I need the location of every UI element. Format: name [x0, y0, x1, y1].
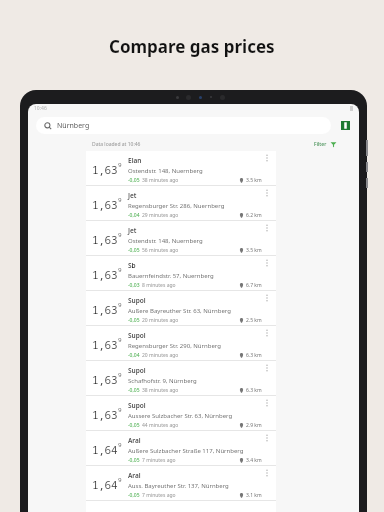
- button[interactable]: 1,63: [86, 396, 276, 431]
- staticText: 3.1 km: [246, 492, 262, 499]
- staticText: 1,63: [92, 197, 118, 212]
- button[interactable]: More options: [262, 294, 272, 325]
- staticText: 20 minutes ago: [142, 317, 179, 324]
- staticText: Compare gas prices: [109, 35, 275, 58]
- staticText: 3.5 km: [246, 247, 262, 254]
- button[interactable]: More options: [262, 469, 272, 500]
- button[interactable]: More options: [262, 399, 272, 430]
- staticText: Jet: [128, 191, 137, 200]
- staticText: Supol: [128, 331, 146, 340]
- staticText: 10:46: [34, 105, 47, 112]
- staticText: 6.3 km: [246, 352, 262, 359]
- button[interactable]: 1,63: [86, 326, 276, 361]
- staticText: -0,05: [128, 177, 140, 184]
- staticText: Nürnberg: [57, 121, 90, 131]
- staticText: -0,05: [128, 387, 140, 394]
- staticText: 3.4 km: [246, 457, 262, 464]
- staticText: 1,63: [92, 302, 118, 317]
- button[interactable]: 1,63: [86, 291, 276, 326]
- staticText: 9: [118, 196, 122, 204]
- staticText: 9: [118, 161, 122, 169]
- staticText: 7 minutes ago: [142, 457, 176, 464]
- staticText: -0,05: [128, 457, 140, 464]
- staticText: -0,05: [128, 247, 140, 254]
- staticText: Sb: [128, 261, 136, 270]
- staticText: 9: [118, 336, 122, 344]
- button[interactable]: Filter: [310, 141, 359, 148]
- staticText: 6.2 km: [246, 212, 262, 219]
- staticText: Ostendstr. 148, Nuernberg: [128, 167, 203, 175]
- staticText: 1,63: [92, 162, 118, 177]
- staticText: Data loaded at 10:46: [92, 141, 141, 148]
- staticText: 44 minutes ago: [142, 422, 179, 429]
- staticText: 1,63: [92, 337, 118, 352]
- staticText: 38 minutes ago: [142, 387, 179, 394]
- staticText: Ostendstr. 148, Nuernberg: [128, 237, 203, 245]
- staticText: 9: [118, 406, 122, 414]
- staticText: 1,64: [92, 442, 118, 457]
- button[interactable]: More options: [262, 224, 272, 255]
- staticText: 2.9 km: [246, 422, 262, 429]
- staticText: 8 minutes ago: [142, 282, 176, 289]
- button[interactable]: 1,63: [86, 361, 276, 396]
- button[interactable]: 1,63: [86, 221, 276, 256]
- staticText: 2.5 km: [246, 317, 262, 324]
- staticText: Filter: [314, 141, 327, 148]
- button[interactable]: More options: [262, 259, 272, 290]
- staticText: Aral: [128, 471, 141, 480]
- staticText: 9: [118, 476, 122, 484]
- staticText: 1,64: [92, 477, 118, 492]
- staticText: 6.3 km: [246, 387, 262, 394]
- staticText: Supol: [128, 296, 146, 305]
- staticText: 1,63: [92, 372, 118, 387]
- staticText: 9: [118, 266, 122, 274]
- button[interactable]: Nürnberg: [36, 117, 331, 134]
- staticText: Elan: [128, 156, 142, 165]
- staticText: -0,05: [128, 317, 140, 324]
- button[interactable]: More options: [262, 154, 272, 185]
- button[interactable]: More options: [262, 329, 272, 360]
- button[interactable]: 1,64: [86, 466, 276, 501]
- button[interactable]: 1,63: [86, 186, 276, 221]
- staticText: 1,63: [92, 407, 118, 422]
- staticText: 9: [118, 231, 122, 239]
- staticText: 1,63: [92, 267, 118, 282]
- button[interactable]: More options: [262, 434, 272, 465]
- button[interactable]: 1,63: [86, 256, 276, 291]
- staticText: -0,03: [128, 282, 140, 289]
- staticText: 1,63: [92, 232, 118, 247]
- staticText: -0,05: [128, 492, 140, 499]
- staticText: 20 minutes ago: [142, 352, 179, 359]
- staticText: Außere Sulzbacher Straße 117, Nürnberg: [128, 447, 244, 455]
- staticText: 56 minutes ago: [142, 247, 179, 254]
- staticText: 29 minutes ago: [142, 212, 179, 219]
- staticText: 3.5 km: [246, 177, 262, 184]
- staticText: Aussere Sulzbacher Str. 63, Nürnberg: [128, 412, 233, 420]
- staticText: 9: [118, 441, 122, 449]
- button[interactable]: More options: [262, 364, 272, 395]
- staticText: Auss. Bayreuther Str. 137, Nürnberg: [128, 482, 229, 490]
- staticText: 38 minutes ago: [142, 177, 179, 184]
- staticText: Aral: [128, 436, 141, 445]
- staticText: 7 minutes ago: [142, 492, 176, 499]
- staticText: Bauernfeindstr. 57, Nuernberg: [128, 272, 214, 280]
- staticText: Jet: [128, 226, 137, 235]
- staticText: -0,05: [128, 422, 140, 429]
- button[interactable]: Map: [339, 119, 351, 131]
- staticText: Regensburger Str. 286, Nuernberg: [128, 202, 225, 210]
- staticText: 6.7 km: [246, 282, 262, 289]
- staticText: Supol: [128, 366, 146, 375]
- staticText: Regensburger Str. 290, Nürnberg: [128, 342, 221, 350]
- staticText: Supol: [128, 401, 146, 410]
- staticText: Außere Bayreuther Str. 63, Nürnberg: [128, 307, 231, 315]
- button[interactable]: 1,63: [86, 151, 276, 186]
- staticText: -0,04: [128, 352, 140, 359]
- staticText: -0,04: [128, 212, 140, 219]
- button[interactable]: More options: [262, 189, 272, 220]
- staticText: 9: [118, 371, 122, 379]
- staticText: Schafhofstr. 9, Nürnberg: [128, 377, 197, 385]
- button[interactable]: 1,64: [86, 431, 276, 466]
- staticText: 9: [118, 301, 122, 309]
